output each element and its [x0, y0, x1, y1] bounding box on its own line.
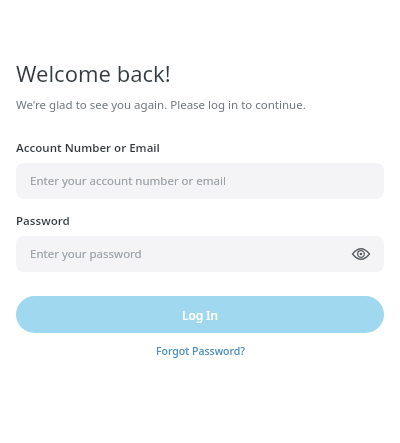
staticText: Forgot Password? — [156, 344, 245, 358]
staticText: Enter your password — [30, 246, 350, 262]
staticText: We're glad to see you again. Please log … — [16, 97, 306, 113]
button[interactable]: Log In — [16, 296, 384, 333]
staticText: Welcome back! — [16, 58, 171, 88]
button[interactable]: Enter your password — [16, 236, 384, 272]
staticText: Account Number or Email — [16, 140, 160, 156]
button[interactable]: Show password — [350, 243, 372, 265]
staticText: Log In — [182, 307, 219, 323]
staticText: Enter your account number or email — [30, 173, 372, 189]
button[interactable]: Forgot Password? — [148, 341, 253, 361]
button[interactable]: Enter your account number or email — [16, 163, 384, 199]
staticText: Password — [16, 213, 70, 229]
